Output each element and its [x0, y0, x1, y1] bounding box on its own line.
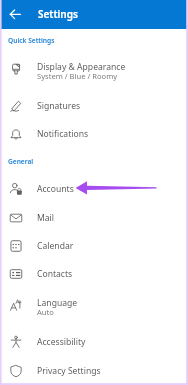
staticText: Signatures: [37, 100, 81, 112]
staticText: Display & Appearance: [37, 61, 126, 73]
button[interactable]: Display & Appearance: [0, 55, 188, 92]
staticText: Accessibility: [37, 336, 86, 348]
staticText: Quick Settings: [8, 36, 55, 45]
staticText: Contacts: [37, 268, 73, 280]
button[interactable]: Accounts: [0, 175, 188, 203]
button[interactable]: Signatures: [0, 92, 188, 120]
staticText: Mail: [37, 212, 55, 224]
button[interactable]: Privacy Settings: [0, 357, 188, 383]
staticText: Notifications: [37, 128, 89, 140]
staticText: Settings: [38, 7, 78, 21]
button[interactable]: Calendar: [0, 232, 188, 260]
staticText: Auto: [37, 307, 54, 317]
button[interactable]: Accessibility: [0, 328, 188, 357]
staticText: General: [8, 157, 34, 166]
staticText: Accounts: [37, 183, 74, 195]
staticText: Calendar: [37, 240, 74, 252]
staticText: Language: [37, 297, 78, 309]
button[interactable]: Back: [5, 4, 26, 25]
button[interactable]: Contacts: [0, 260, 188, 291]
button[interactable]: Language: [0, 291, 188, 330]
staticText: System / Blue / Roomy: [37, 71, 118, 81]
button[interactable]: Mail: [0, 204, 188, 232]
staticText: Privacy Settings: [37, 365, 101, 377]
button[interactable]: Notifications: [0, 120, 188, 148]
